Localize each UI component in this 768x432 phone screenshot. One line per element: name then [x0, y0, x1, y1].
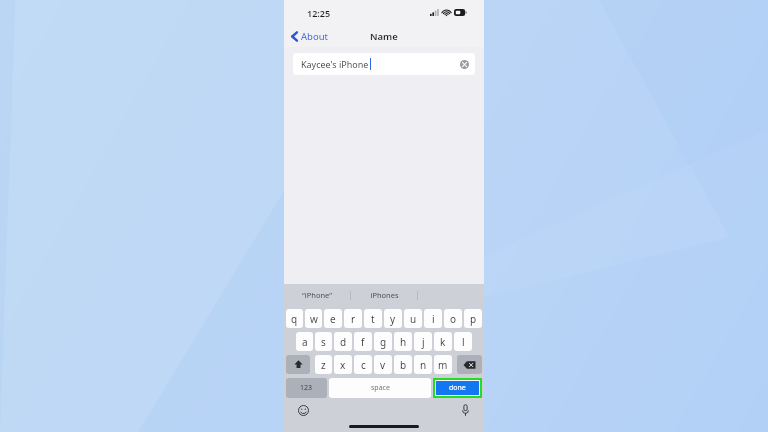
- staticText: f: [361, 335, 365, 349]
- button[interactable]: f: [354, 332, 372, 351]
- staticText: v: [380, 358, 386, 372]
- staticText: s: [321, 335, 326, 349]
- staticText: 12:25: [307, 7, 331, 19]
- staticText: r: [351, 312, 356, 326]
- staticText: g: [380, 335, 387, 349]
- button[interactable]: c: [354, 355, 372, 374]
- button[interactable]: Kaycee's iPhone: [293, 53, 475, 75]
- button[interactable]: Clear text: [460, 60, 469, 69]
- staticText: Kaycee's iPhone: [301, 58, 369, 70]
- button[interactable]: y: [384, 309, 402, 328]
- button[interactable]: k: [434, 332, 452, 351]
- staticText: q: [291, 312, 298, 326]
- button[interactable]: t: [364, 309, 382, 328]
- button[interactable]: d: [334, 332, 352, 351]
- staticText: iPhones: [370, 290, 399, 300]
- staticText: b: [400, 358, 407, 372]
- staticText: t: [371, 312, 375, 326]
- button[interactable]: About: [288, 28, 331, 45]
- staticText: y: [390, 312, 396, 326]
- button[interactable]: Dictation: [461, 404, 470, 416]
- button[interactable]: Shift: [286, 355, 310, 374]
- button[interactable]: w: [305, 309, 322, 328]
- staticText: k: [440, 335, 446, 349]
- staticText: l: [462, 335, 465, 349]
- button[interactable]: o: [444, 309, 462, 328]
- staticText: space: [371, 383, 390, 393]
- button[interactable]: r: [344, 309, 362, 328]
- staticText: a: [302, 335, 308, 349]
- staticText: “iPhone”: [302, 290, 332, 300]
- staticText: p: [470, 312, 477, 326]
- button[interactable]: g: [374, 332, 392, 351]
- button[interactable]: q: [286, 309, 303, 328]
- staticText: w: [310, 312, 318, 326]
- button[interactable]: x: [334, 355, 352, 374]
- button[interactable]: e: [324, 309, 342, 328]
- button[interactable]: a: [296, 332, 313, 351]
- button[interactable]: m: [434, 355, 452, 374]
- button[interactable]: v: [374, 355, 392, 374]
- staticText: e: [330, 312, 336, 326]
- button[interactable]: done: [436, 381, 479, 395]
- button[interactable]: b: [394, 355, 412, 374]
- button[interactable]: “iPhone”: [284, 284, 350, 306]
- staticText: j: [422, 335, 425, 349]
- button[interactable]: h: [394, 332, 412, 351]
- staticText: x: [340, 358, 346, 372]
- button[interactable]: n: [414, 355, 432, 374]
- staticText: done: [449, 383, 466, 393]
- button[interactable]: p: [464, 309, 482, 328]
- button[interactable]: z: [315, 355, 332, 374]
- staticText: d: [340, 335, 347, 349]
- button[interactable]: j: [414, 332, 432, 351]
- staticText: n: [420, 358, 427, 372]
- staticText: c: [361, 358, 366, 372]
- staticText: About: [301, 30, 328, 43]
- button[interactable]: Backspace: [457, 355, 482, 374]
- button[interactable]: 123: [286, 378, 327, 398]
- staticText: h: [400, 335, 407, 349]
- staticText: u: [410, 312, 417, 326]
- button[interactable]: Emoji: [298, 405, 309, 416]
- staticText: Name: [370, 30, 398, 43]
- staticText: o: [450, 312, 457, 326]
- button[interactable]: iPhones: [351, 284, 417, 306]
- staticText: 123: [300, 383, 313, 393]
- staticText: i: [432, 312, 435, 326]
- button[interactable]: l: [454, 332, 472, 351]
- staticText: m: [438, 358, 448, 372]
- button[interactable]: i: [424, 309, 442, 328]
- button[interactable]: space: [329, 378, 431, 398]
- button[interactable]: s: [315, 332, 332, 351]
- button[interactable]: u: [404, 309, 422, 328]
- staticText: z: [321, 358, 326, 372]
